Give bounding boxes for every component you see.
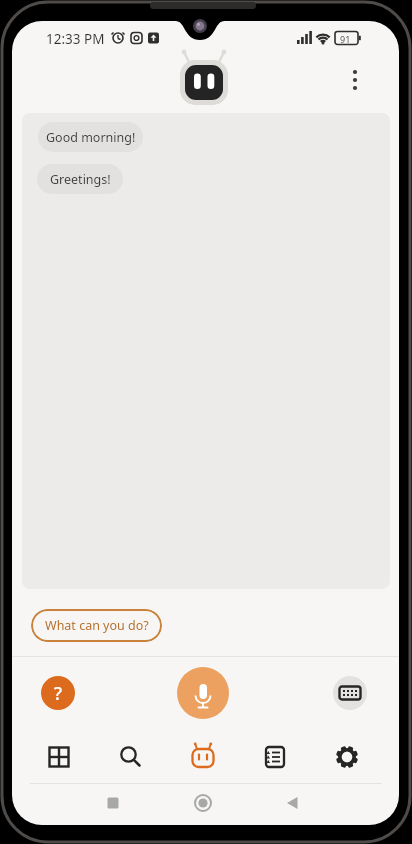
staticText: Greetings! (50, 171, 111, 188)
button[interactable] (179, 785, 227, 823)
button[interactable] (341, 62, 369, 100)
button[interactable] (177, 667, 229, 719)
button[interactable] (105, 731, 157, 783)
staticText: 91 (340, 33, 351, 45)
staticText: ? (54, 681, 63, 706)
staticText: What can you do? (45, 617, 149, 634)
button[interactable]: What can you do? (31, 609, 162, 642)
button[interactable] (333, 676, 367, 710)
button[interactable] (321, 731, 373, 783)
button[interactable]: ? (41, 676, 75, 710)
button[interactable] (33, 731, 85, 783)
button[interactable] (177, 731, 229, 783)
button[interactable] (249, 731, 301, 783)
button[interactable] (89, 785, 137, 823)
staticText: Good morning! (46, 129, 136, 146)
staticText: 12:33 PM (46, 30, 105, 48)
button[interactable] (268, 785, 316, 823)
